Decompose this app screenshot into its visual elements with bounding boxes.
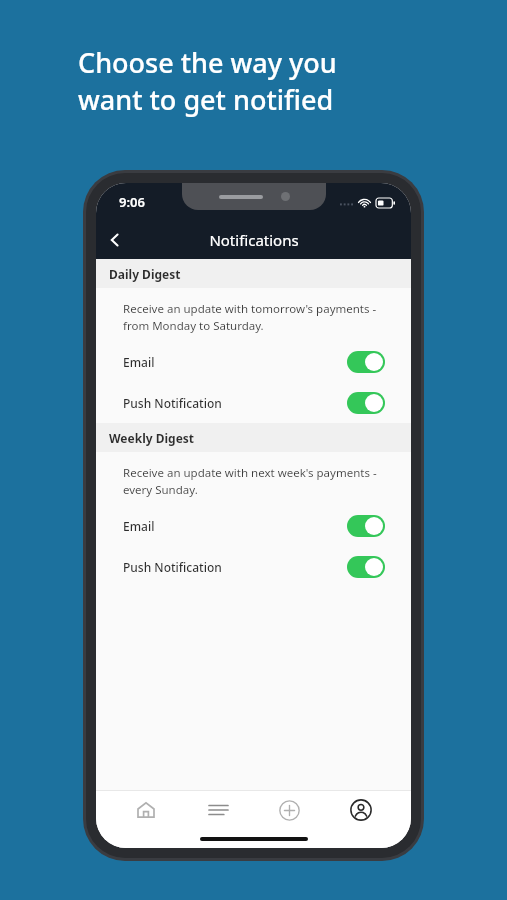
button[interactable]: Profile <box>340 790 382 830</box>
button[interactable]: Toggle on <box>347 556 385 578</box>
button[interactable]: Home <box>125 790 167 830</box>
button[interactable]: Toggle on <box>347 392 385 414</box>
staticText: Receive an update with next week's payme… <box>123 465 377 497</box>
staticText: Daily Digest <box>109 266 181 282</box>
button[interactable]: Toggle on <box>347 351 385 373</box>
staticText: Email <box>123 518 347 534</box>
staticText: Choose the way you <box>78 44 337 81</box>
staticText: 9:06 <box>119 193 145 211</box>
button[interactable]: Menu <box>197 790 239 830</box>
button[interactable]: Push Notification <box>96 546 411 587</box>
staticText: Notifications <box>209 230 299 250</box>
button[interactable]: Email <box>96 341 411 382</box>
staticText: Email <box>123 354 347 370</box>
staticText: want to get notified <box>78 81 334 118</box>
button[interactable]: Push Notification <box>96 382 411 423</box>
button[interactable]: Email <box>96 505 411 546</box>
button[interactable]: Add <box>268 790 310 830</box>
button[interactable]: Toggle on <box>347 515 385 537</box>
staticText: Push Notification <box>123 395 347 411</box>
staticText: Push Notification <box>123 559 347 575</box>
staticText: Weekly Digest <box>109 430 195 446</box>
button[interactable]: Back <box>96 221 134 259</box>
staticText: Receive an update with tomorrow's paymen… <box>123 301 377 333</box>
